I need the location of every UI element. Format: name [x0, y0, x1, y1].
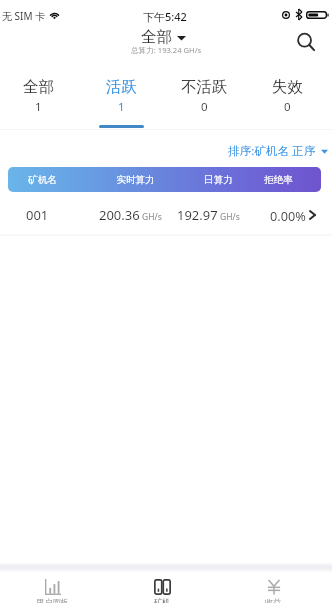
button[interactable]: Search — [292, 28, 320, 56]
staticText: 收益 — [265, 597, 282, 603]
staticText: 200.36 — [99, 206, 140, 224]
staticText: 总算力: 193.24 GH/s — [131, 45, 202, 55]
staticText: 矿机名 — [28, 174, 57, 186]
staticText: 全部 — [141, 27, 172, 47]
staticText: 用户面板 — [36, 597, 69, 603]
staticText: 不活跃 — [181, 77, 228, 97]
staticText: 全部 — [23, 77, 54, 97]
staticText: 排序:矿机名 正序 — [228, 143, 316, 159]
staticText: 拒绝率 — [264, 174, 293, 186]
button[interactable]: 活跃 — [80, 60, 163, 130]
button[interactable]: 全部 — [0, 60, 80, 130]
button[interactable]: 用户面板 — [0, 573, 107, 603]
staticText: 0 — [201, 99, 208, 115]
staticText: 192.97 — [177, 206, 218, 224]
staticText: 0.00% — [270, 207, 306, 224]
staticText: 活跃 — [106, 77, 137, 97]
button[interactable]: 矿机 — [107, 573, 218, 603]
staticText: 1 — [118, 99, 125, 115]
staticText: 日算力 — [204, 174, 233, 186]
button[interactable]: 失效 — [246, 60, 329, 130]
button[interactable]: 排序:矿机名 正序 — [226, 140, 330, 162]
staticText: 1 — [35, 99, 42, 115]
staticText: GH/s — [142, 211, 162, 223]
staticText: 下午5:42 — [143, 9, 187, 24]
staticText: 失效 — [272, 77, 303, 97]
staticText: 无 SIM 卡 — [2, 9, 46, 23]
button[interactable]: 不活跃 — [163, 60, 246, 130]
button[interactable]: 001 — [0, 193, 332, 237]
staticText: 0 — [284, 99, 291, 115]
button[interactable]: 收益 — [218, 573, 329, 603]
staticText: 矿机 — [154, 597, 171, 603]
staticText: 实时算力 — [116, 174, 155, 186]
staticText: 001 — [26, 206, 49, 224]
button[interactable]: 全部 — [141, 27, 186, 47]
staticText: GH/s — [220, 211, 240, 223]
